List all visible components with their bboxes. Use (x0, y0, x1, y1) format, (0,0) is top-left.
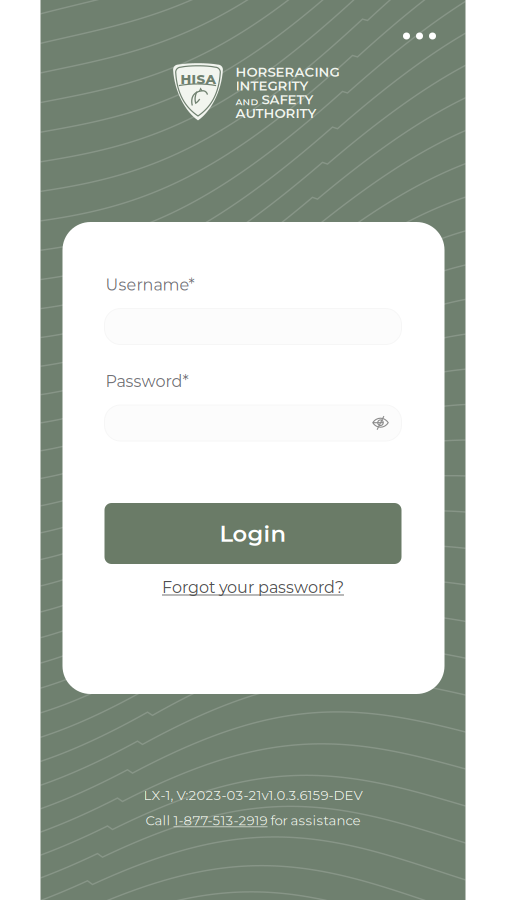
staticText: Call (145, 812, 173, 829)
staticText: INTEGRITY (235, 78, 308, 94)
button[interactable]: More options (388, 13, 450, 59)
staticText: Forgot your password? (162, 577, 344, 597)
staticText: HORSERACING (235, 64, 339, 80)
staticText: for assistance (267, 812, 360, 829)
staticText: 1-877-513-2919 (173, 812, 267, 829)
staticText: Username* (105, 275, 194, 294)
staticText: SAFETY (261, 91, 313, 108)
staticText: HISA (180, 71, 215, 87)
staticText: AND (235, 96, 258, 108)
staticText: Login (219, 520, 286, 547)
button[interactable]: Login (104, 503, 401, 564)
staticText: AUTHORITY (235, 105, 316, 121)
button[interactable]: Forgot your password? (104, 564, 401, 597)
button[interactable]: 1-877-513-2919 (173, 812, 267, 829)
staticText: LX-1, V:2023-03-21v1.0.3.6159-DEV (143, 787, 362, 803)
staticText: Password* (105, 371, 188, 391)
button[interactable]: Show password (359, 405, 401, 441)
